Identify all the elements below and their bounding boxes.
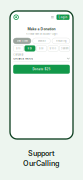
- staticText: $10: [16, 47, 21, 50]
- staticText: Donate $25: [32, 67, 50, 71]
- staticText: Recurring: [56, 39, 66, 42]
- staticText: $25: [27, 47, 32, 50]
- button[interactable]: Donate $25: [13, 65, 70, 74]
- staticText: Login: [58, 15, 67, 19]
- staticText: $100: [50, 47, 57, 50]
- button[interactable]: $100: [48, 46, 58, 51]
- staticText: One Time: [17, 39, 28, 42]
- button[interactable]: Login: [56, 14, 69, 20]
- button[interactable]: $10: [13, 46, 24, 51]
- staticText: Campaign: [13, 53, 23, 56]
- staticText: Make a Donation: [27, 27, 55, 31]
- staticText: Custom: [61, 47, 69, 50]
- staticText: Greatest Need: [13, 57, 33, 60]
- button[interactable]: Menu: [50, 15, 55, 19]
- staticText: Support: [28, 149, 55, 158]
- button[interactable]: One Time: [13, 38, 31, 44]
- button[interactable]: Recurring: [52, 38, 70, 44]
- staticText: Monthly: [37, 39, 45, 42]
- button[interactable]: Custom: [59, 46, 70, 51]
- staticText: $50: [39, 47, 44, 50]
- button[interactable]: $25: [25, 46, 35, 51]
- button[interactable]: Monthly: [33, 38, 50, 44]
- button[interactable]: Campaign: [13, 53, 70, 62]
- staticText: OurCalling: [23, 159, 60, 168]
- staticText: Already have an account? Login: [26, 33, 57, 35]
- button[interactable]: $50: [36, 46, 47, 51]
